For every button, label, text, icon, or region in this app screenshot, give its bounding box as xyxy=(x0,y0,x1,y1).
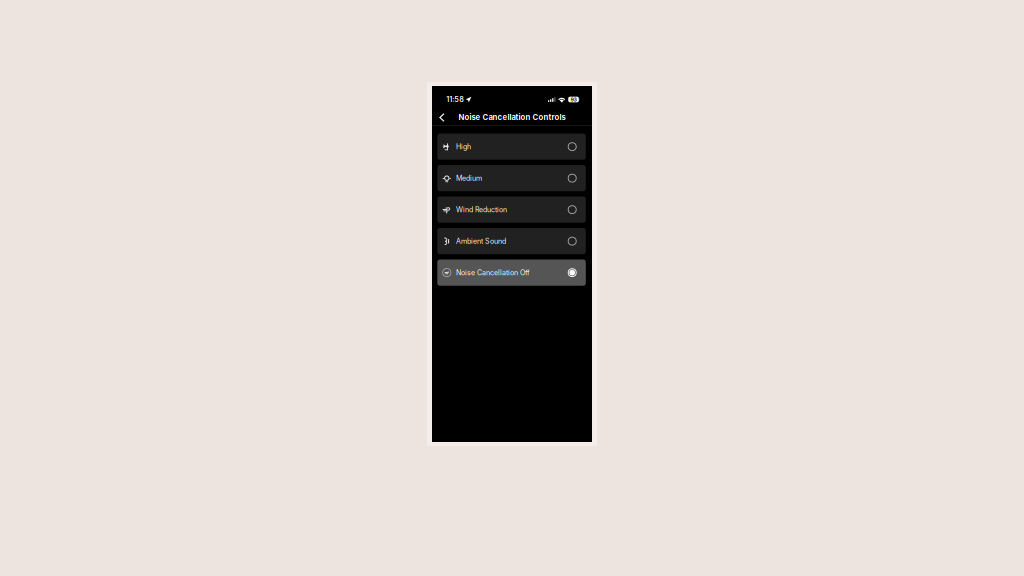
button[interactable]: Back xyxy=(432,110,451,125)
staticText: Wind Reduction xyxy=(456,205,507,214)
staticText: 93 xyxy=(570,96,576,103)
staticText: Medium xyxy=(456,174,482,182)
button[interactable]: Noise Cancellation Off xyxy=(437,260,586,286)
button[interactable]: Medium xyxy=(437,165,586,191)
staticText: Ambient Sound xyxy=(456,237,506,245)
staticText: High xyxy=(456,142,471,151)
staticText: Noise Cancellation Off xyxy=(456,268,530,277)
staticText: 11:58 xyxy=(446,95,464,104)
button[interactable]: Wind Reduction xyxy=(437,197,586,223)
button[interactable]: High xyxy=(437,134,586,160)
staticText: Noise Cancellation Controls xyxy=(458,112,565,122)
button[interactable]: Ambient Sound xyxy=(437,228,586,254)
